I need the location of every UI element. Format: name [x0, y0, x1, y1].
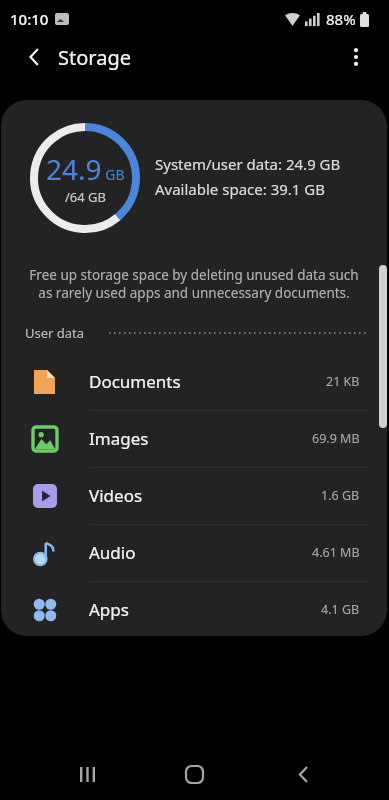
- button[interactable]: [279, 750, 327, 798]
- button[interactable]: [170, 750, 218, 798]
- staticText: System/user data: 24.9 GB: [155, 154, 341, 174]
- staticText: 69.9 MB: [312, 430, 360, 447]
- button[interactable]: [18, 40, 52, 74]
- staticText: Images: [89, 427, 149, 450]
- staticText: Storage: [58, 44, 131, 71]
- button[interactable]: [341, 42, 371, 72]
- staticText: Apps: [89, 598, 129, 621]
- staticText: 88%: [326, 9, 356, 29]
- staticText: Available space: 39.1 GB: [155, 179, 325, 199]
- button[interactable]: Apps: [1, 581, 387, 636]
- button[interactable]: Documents: [1, 353, 387, 410]
- staticText: 4.1 GB: [321, 601, 360, 618]
- button[interactable]: Images: [1, 410, 387, 467]
- staticText: Documents: [89, 370, 181, 393]
- staticText: 21 KB: [326, 373, 360, 390]
- staticText: Free up storage space by deleting unused…: [1, 266, 387, 302]
- staticText: User data: [25, 324, 85, 342]
- staticText: /64 GB: [65, 188, 107, 206]
- staticText: 4.61 MB: [312, 544, 360, 561]
- button[interactable]: Audio: [1, 524, 387, 581]
- staticText: Videos: [89, 484, 143, 507]
- staticText: 10:10: [10, 9, 49, 29]
- button[interactable]: [63, 750, 111, 798]
- staticText: 24.9 GB: [46, 150, 125, 188]
- staticText: 1.6 GB: [321, 487, 360, 504]
- staticText: Audio: [89, 541, 136, 564]
- button[interactable]: Videos: [1, 467, 387, 524]
